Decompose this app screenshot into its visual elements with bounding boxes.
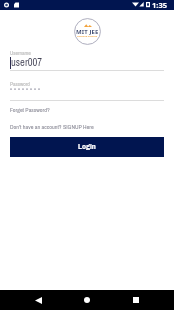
staticText: 1:35	[152, 0, 167, 10]
staticText: Username	[10, 49, 31, 56]
button[interactable]: Recent apps	[125, 290, 146, 310]
staticText: user007	[11, 55, 43, 69]
staticText: Password	[10, 80, 30, 87]
button[interactable]: Home	[76, 290, 97, 310]
staticText: coaching institute	[77, 34, 98, 37]
staticText: Forget Password?	[10, 106, 50, 114]
button[interactable]: Don't have an account? SIGNUP Here	[10, 123, 94, 131]
button[interactable]: Back	[28, 290, 49, 310]
staticText: ••••••••	[10, 85, 43, 94]
button[interactable]: Login	[10, 137, 164, 157]
staticText: Login	[78, 141, 96, 152]
staticText: MIT JEE	[76, 28, 99, 36]
button[interactable]: Forget Password?	[10, 106, 50, 114]
staticText: Don't have an account? SIGNUP Here	[10, 123, 94, 131]
